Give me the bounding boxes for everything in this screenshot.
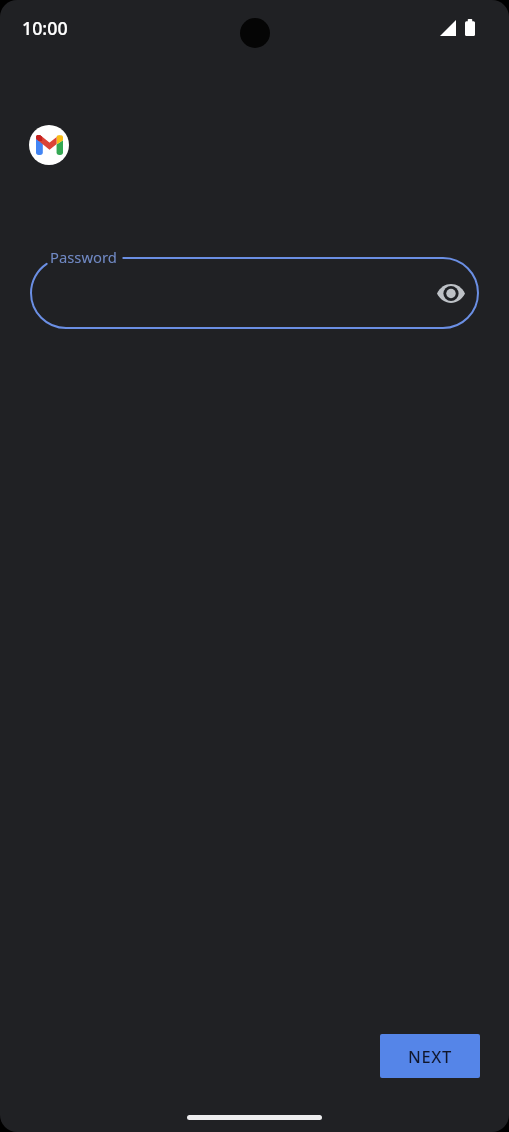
button[interactable]: Password	[30, 257, 479, 329]
staticText: Password	[50, 247, 117, 267]
staticText: NEXT	[408, 1045, 452, 1067]
button[interactable]: NEXT	[380, 1034, 480, 1078]
staticText: 10:00	[22, 16, 68, 40]
button[interactable]: Show password	[429, 271, 473, 315]
